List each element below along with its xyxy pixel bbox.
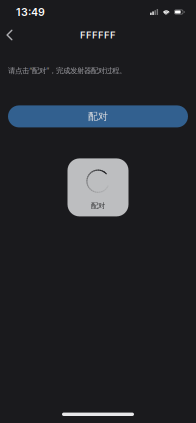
staticText: 请点击“配对”，完成发射器配对过程。 [8, 66, 126, 75]
staticText: FFFFFF [80, 29, 116, 41]
button[interactable]: 配对 [8, 105, 188, 127]
button[interactable]: 配对 [67, 158, 128, 216]
button[interactable]: Back [0, 24, 22, 46]
staticText: 13:49 [16, 5, 45, 18]
staticText: 配对 [88, 110, 108, 123]
staticText: 配对 [91, 201, 105, 210]
